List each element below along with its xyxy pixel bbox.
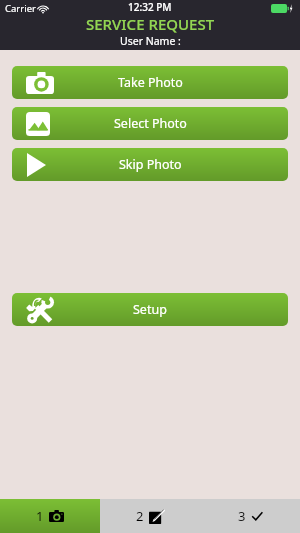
staticText: Setup (133, 301, 167, 318)
staticText: Select Photo (114, 115, 187, 132)
staticText: 12:32 PM (128, 0, 172, 14)
staticText: Skip Photo (119, 156, 182, 173)
staticText: SERVICE REQUEST (86, 14, 215, 34)
button[interactable]: Skip Photo (12, 148, 288, 181)
staticText: 2 (136, 507, 144, 525)
staticText: Carrier (5, 2, 36, 15)
button[interactable]: Take Photo (12, 66, 288, 99)
staticText: 3 (238, 507, 246, 525)
button[interactable]: Step 3 Confirm (200, 499, 300, 533)
button[interactable]: Step 2 Details (100, 499, 200, 533)
button[interactable]: Step 1 Photo (0, 499, 100, 533)
staticText: User Name : (120, 34, 181, 48)
button[interactable]: Setup (12, 293, 288, 326)
staticText: Take Photo (118, 74, 183, 91)
button[interactable]: Select Photo (12, 107, 288, 140)
staticText: 1 (36, 507, 44, 525)
